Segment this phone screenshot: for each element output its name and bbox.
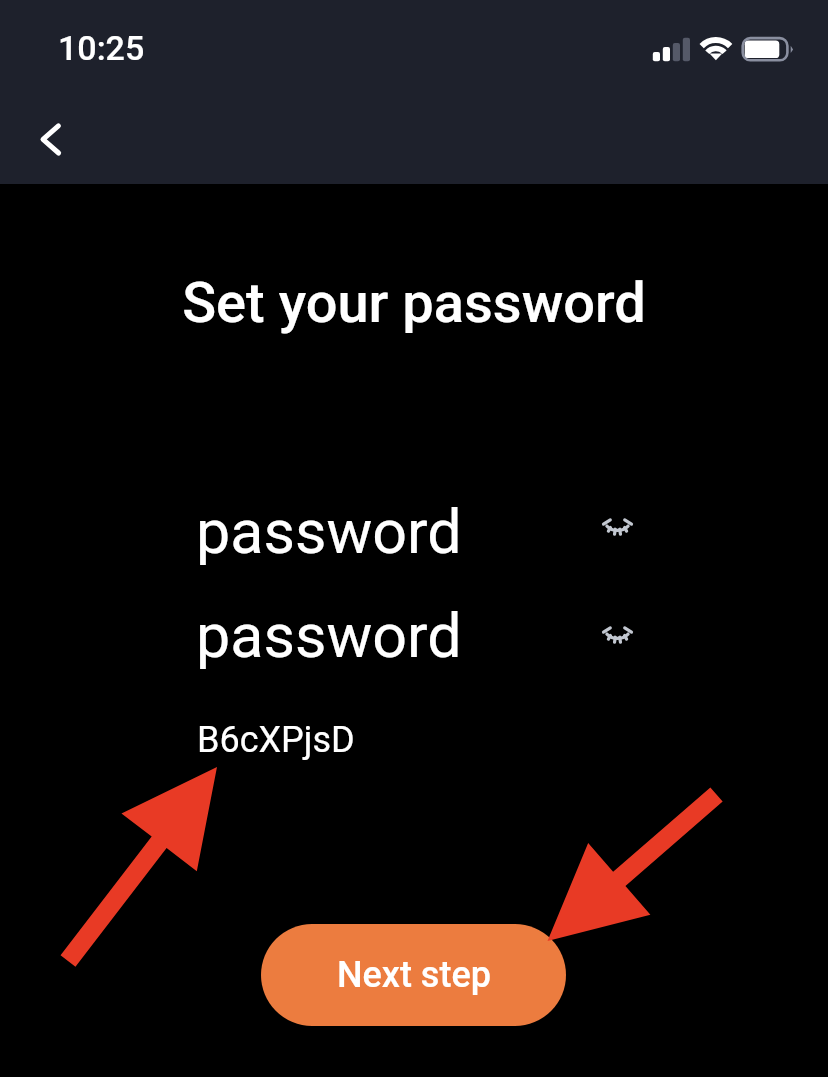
button[interactable]: Show password: [586, 497, 646, 557]
button[interactable]: Back: [15, 103, 88, 176]
staticText: password: [196, 600, 462, 671]
staticText: B6cXPjsD: [197, 719, 355, 761]
staticText: Next step: [337, 954, 491, 996]
staticText: 10:25: [58, 28, 145, 68]
staticText: password: [196, 496, 462, 567]
staticText: Set your password: [0, 270, 828, 336]
button[interactable]: Next step: [261, 924, 566, 1026]
button[interactable]: Show password: [586, 605, 646, 665]
